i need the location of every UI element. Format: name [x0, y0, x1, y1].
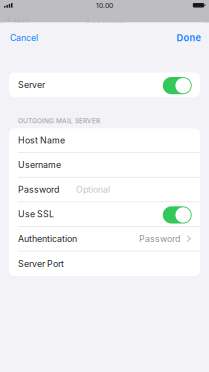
button[interactable]: Cancel — [0, 22, 46, 53]
staticText: Done — [177, 32, 201, 43]
staticText: Use SSL — [18, 209, 54, 219]
staticText: Server — [18, 79, 45, 90]
staticText: Password — [18, 184, 59, 195]
button[interactable]: Done — [169, 22, 209, 53]
staticText: OUTGOING MAIL SERVER — [18, 117, 100, 125]
staticText: Optional — [76, 184, 110, 195]
button[interactable]: Username — [9, 153, 200, 177]
button[interactable]: Host Name — [9, 128, 200, 152]
button[interactable]: Password — [9, 178, 200, 201]
button[interactable]: Server Port — [9, 251, 200, 276]
staticText: Host Name — [18, 135, 65, 146]
button[interactable]: On — [163, 76, 192, 93]
button[interactable]: Authentication — [9, 227, 200, 251]
staticText: 10.00 — [96, 1, 113, 10]
staticText: Server Port — [18, 258, 64, 269]
staticText: Username — [18, 160, 61, 170]
staticText: Password — [139, 233, 180, 244]
staticText: Cancel — [10, 32, 38, 43]
button[interactable]: On — [163, 205, 192, 223]
staticText: Authentication — [18, 233, 77, 244]
staticText: Accounts — [85, 18, 124, 29]
staticText: Mail — [13, 17, 29, 27]
